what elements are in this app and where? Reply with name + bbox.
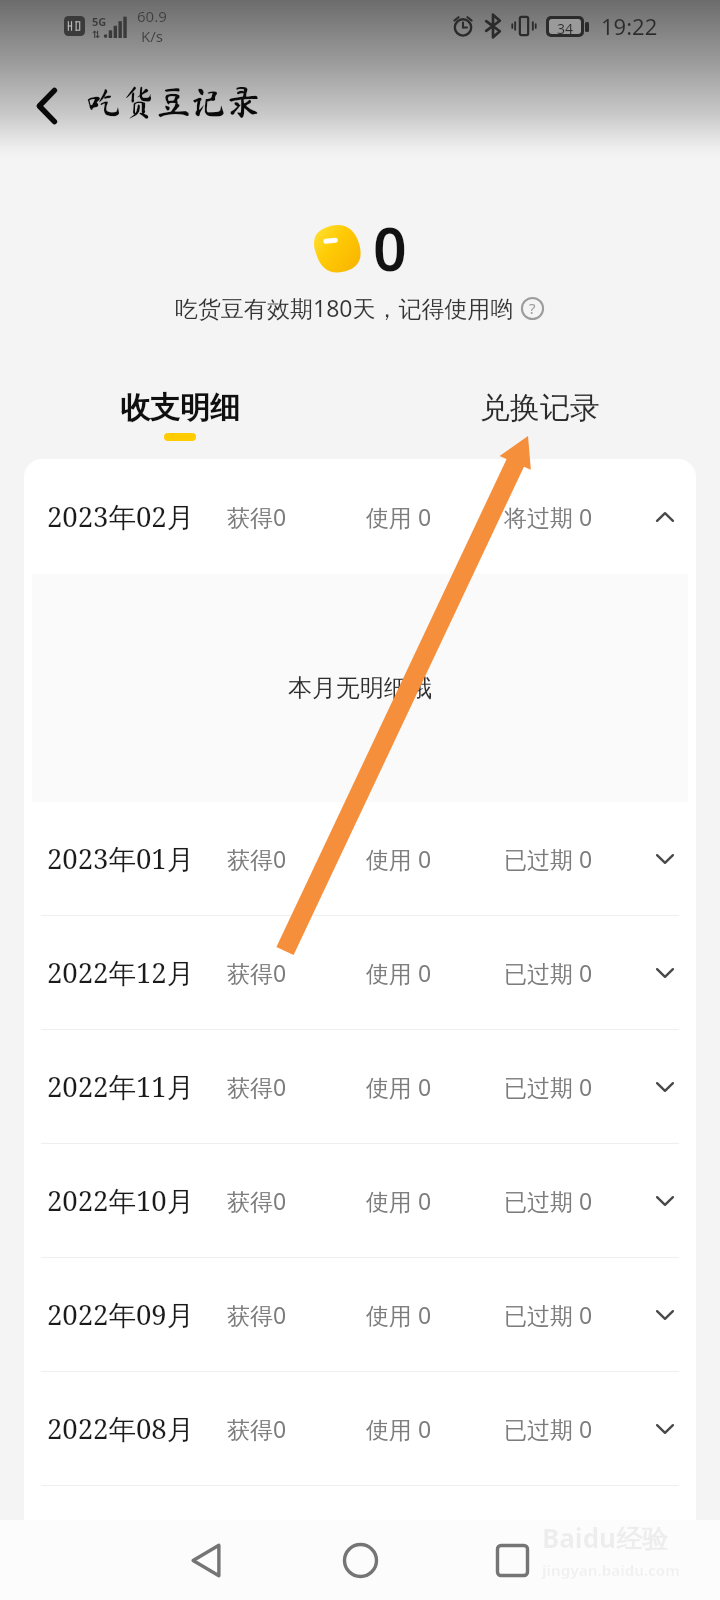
staticText: 0 bbox=[373, 208, 407, 288]
staticText: 使用 0 bbox=[366, 1299, 432, 1330]
button[interactable]: 2022年09月 bbox=[24, 1258, 696, 1371]
staticText: K/s bbox=[141, 26, 164, 46]
button[interactable]: Recents bbox=[484, 1532, 540, 1588]
staticText: 吃货豆记录 bbox=[86, 84, 262, 119]
staticText: 19:22 bbox=[601, 11, 658, 41]
staticText: 已过期 0 bbox=[504, 1185, 593, 1216]
button[interactable]: Back bbox=[18, 82, 74, 130]
staticText: ? bbox=[529, 298, 536, 318]
staticText: 兑换记录 bbox=[480, 389, 600, 427]
staticText: 2022年08月 bbox=[47, 1410, 195, 1448]
staticText: 2022年12月 bbox=[47, 954, 195, 992]
staticText: 本月无明细哦 bbox=[288, 673, 432, 703]
staticText: 获得0 bbox=[227, 1071, 287, 1102]
staticText: 34 bbox=[557, 19, 574, 34]
staticText: 吃货豆有效期180天，记得使用哟 bbox=[175, 292, 514, 323]
staticText: 2023年01月 bbox=[47, 840, 195, 878]
staticText: 已过期 0 bbox=[504, 1071, 593, 1102]
staticText: 获得0 bbox=[227, 843, 287, 874]
staticText: 已过期 0 bbox=[504, 1413, 593, 1444]
staticText: Baidu经验 bbox=[542, 1520, 668, 1556]
staticText: 2022年10月 bbox=[47, 1182, 195, 1220]
button[interactable]: 收支明细 bbox=[80, 385, 280, 445]
staticText: 使用 0 bbox=[366, 957, 432, 988]
staticText: 已过期 0 bbox=[504, 957, 593, 988]
staticText: 获得0 bbox=[227, 1185, 287, 1216]
staticText: 2022年09月 bbox=[47, 1296, 195, 1334]
staticText: 获得0 bbox=[227, 957, 287, 988]
staticText: 使用 0 bbox=[366, 1185, 432, 1216]
staticText: 使用 0 bbox=[366, 1413, 432, 1444]
staticText: 使用 0 bbox=[366, 843, 432, 874]
staticText: ⇅ bbox=[92, 29, 101, 38]
button[interactable]: Help bbox=[519, 295, 545, 321]
staticText: 60.9 bbox=[137, 6, 167, 26]
button[interactable]: Home bbox=[332, 1532, 388, 1588]
staticText: 已过期 0 bbox=[504, 843, 593, 874]
staticText: 2022年11月 bbox=[47, 1068, 195, 1106]
staticText: jingyan.baidu.com bbox=[542, 1560, 680, 1580]
button[interactable]: 兑换记录 bbox=[440, 385, 640, 431]
staticText: 2023年02月 bbox=[47, 498, 195, 536]
staticText: 获得0 bbox=[227, 501, 287, 532]
button[interactable]: 2022年10月 bbox=[24, 1144, 696, 1257]
staticText: 将过期 0 bbox=[504, 501, 593, 532]
staticText: 获得0 bbox=[227, 1299, 287, 1330]
staticText: 收支明细 bbox=[120, 389, 240, 427]
staticText: 使用 0 bbox=[366, 1071, 432, 1102]
staticText: 已过期 0 bbox=[504, 1299, 593, 1330]
staticText: 5G bbox=[92, 14, 107, 29]
button[interactable]: Back bbox=[178, 1532, 234, 1588]
button[interactable]: 2023年01月 bbox=[24, 802, 696, 915]
staticText: 使用 0 bbox=[366, 501, 432, 532]
button[interactable]: 2022年08月 bbox=[24, 1372, 696, 1485]
staticText: 获得0 bbox=[227, 1413, 287, 1444]
button[interactable]: 2023年02月 bbox=[24, 459, 696, 574]
button[interactable]: 2022年11月 bbox=[24, 1030, 696, 1143]
button[interactable]: 2022年12月 bbox=[24, 916, 696, 1029]
